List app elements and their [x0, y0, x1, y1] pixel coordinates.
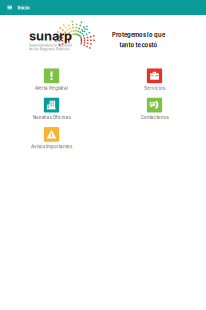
- staticText: sunarp: [29, 28, 72, 44]
- staticText: Contáctenos: [140, 115, 168, 120]
- staticText: Servicios: [144, 85, 165, 91]
- button[interactable]: SUNARP: [29, 28, 72, 51]
- button[interactable]: Avisos Importantes: [0, 126, 103, 150]
- staticText: Nuestras Oficinas: [32, 115, 70, 120]
- staticText: de los Registros Públicos: [29, 47, 70, 51]
- staticText: Avisos Importantes: [31, 144, 72, 149]
- staticText: tanto te costó: [119, 42, 157, 49]
- staticText: Superintendencia Nacional: [29, 44, 72, 47]
- staticText: Protegemos lo que: [112, 31, 165, 38]
- staticText: Alerta Registral: [35, 85, 68, 91]
- button[interactable]: Servicios: [103, 68, 206, 92]
- button[interactable]: Nuestras Oficinas: [0, 97, 103, 121]
- button[interactable]: Inicio: [15, 0, 31, 15]
- button[interactable]: Contáctenos: [103, 97, 206, 121]
- button[interactable]: Menu: [4, 0, 15, 15]
- button[interactable]: Alerta Registral: [0, 68, 103, 92]
- staticText: Inicio: [17, 4, 29, 11]
